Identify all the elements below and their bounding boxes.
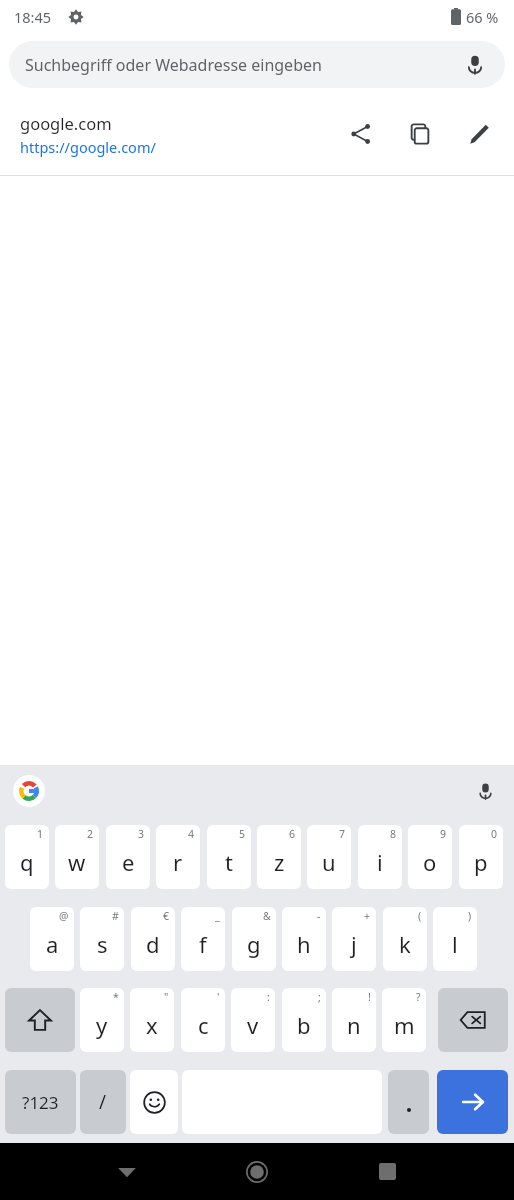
button[interactable]: Recents <box>337 1143 437 1200</box>
staticText: 1 <box>37 827 44 841</box>
button[interactable]: 4 <box>156 825 200 889</box>
staticText: d <box>146 929 160 959</box>
staticText: Suchbegriff oder Webadresse eingeben <box>25 54 322 76</box>
staticText: @ <box>59 909 69 923</box>
staticText: ? <box>416 990 421 1004</box>
staticText: 66 % <box>466 7 499 27</box>
staticText: 7 <box>339 827 346 841</box>
button[interactable]: 0 <box>459 825 503 889</box>
staticText: g <box>247 929 261 959</box>
staticText: x <box>146 1010 158 1040</box>
staticText: ; <box>318 990 321 1004</box>
staticText: i <box>377 847 383 877</box>
button[interactable]: ) <box>433 907 477 971</box>
button[interactable]: Google <box>13 775 45 807</box>
staticText: q <box>20 847 34 877</box>
staticText: " <box>164 990 169 1004</box>
staticText: u <box>322 847 336 877</box>
button[interactable]: ' <box>181 988 225 1052</box>
button[interactable]: @ <box>30 907 74 971</box>
button[interactable]: Go <box>437 1070 508 1134</box>
button[interactable]: _ <box>181 907 225 971</box>
staticText: ?123 <box>22 1091 59 1114</box>
staticText: € <box>163 909 170 923</box>
button[interactable]: Slash <box>80 1070 126 1134</box>
button[interactable]: Copy <box>398 112 442 156</box>
staticText: s <box>97 929 108 959</box>
staticText: j <box>351 929 357 959</box>
button[interactable]: - <box>282 907 326 971</box>
staticText: 3 <box>138 827 145 841</box>
staticText: z <box>274 847 285 877</box>
staticText: 5 <box>239 827 246 841</box>
button[interactable]: ; <box>282 988 326 1052</box>
button[interactable]: € <box>131 907 175 971</box>
staticText: n <box>347 1010 361 1040</box>
staticText: ) <box>468 909 472 923</box>
staticText: - <box>317 909 321 923</box>
staticText: 8 <box>390 827 397 841</box>
staticText: f <box>199 929 207 959</box>
button[interactable]: 3 <box>106 825 150 889</box>
button[interactable]: google.com <box>0 96 514 176</box>
button[interactable]: + <box>332 907 376 971</box>
staticText: # <box>112 909 119 923</box>
staticText: _ <box>215 909 220 923</box>
button[interactable]: 6 <box>257 825 301 889</box>
button[interactable]: ! <box>332 988 376 1052</box>
staticText: e <box>122 847 135 877</box>
staticText: y <box>96 1010 108 1040</box>
button[interactable]: Voice search <box>458 48 492 82</box>
button[interactable]: Edit <box>458 112 502 156</box>
staticText: v <box>247 1010 259 1040</box>
staticText: ' <box>217 990 220 1004</box>
staticText: 9 <box>440 827 447 841</box>
staticText: ( <box>418 909 422 923</box>
button[interactable]: 5 <box>207 825 251 889</box>
button[interactable]: 2 <box>55 825 99 889</box>
staticText: https://google.com/ <box>20 137 156 157</box>
button[interactable]: Symbols <box>5 1070 76 1134</box>
button[interactable]: Voice input <box>468 774 502 808</box>
staticText: & <box>263 909 271 923</box>
staticText: p <box>474 847 488 877</box>
staticText: w <box>68 847 86 877</box>
staticText: a <box>46 929 59 959</box>
button[interactable]: 1 <box>5 825 49 889</box>
staticText: b <box>297 1010 311 1040</box>
staticText: r <box>173 847 183 877</box>
button[interactable]: 9 <box>408 825 452 889</box>
staticText: 18:45 <box>14 7 52 27</box>
button[interactable]: " <box>130 988 174 1052</box>
button[interactable]: Suchbegriff oder Webadresse eingeben <box>9 41 505 88</box>
button[interactable]: Back <box>77 1143 177 1200</box>
staticText: l <box>452 929 458 959</box>
button[interactable]: * <box>80 988 124 1052</box>
staticText: 0 <box>491 827 498 841</box>
button[interactable]: : <box>231 988 275 1052</box>
staticText: m <box>394 1010 415 1040</box>
button[interactable]: Shift <box>5 988 75 1052</box>
button[interactable]: # <box>80 907 124 971</box>
staticText: k <box>399 929 411 959</box>
button[interactable]: ? <box>382 988 426 1052</box>
staticText: c <box>198 1010 209 1040</box>
button[interactable]: 8 <box>358 825 402 889</box>
staticText: ! <box>368 990 371 1004</box>
button[interactable]: & <box>232 907 276 971</box>
staticText: 4 <box>188 827 195 841</box>
button[interactable]: Backspace <box>438 988 508 1052</box>
button[interactable]: 7 <box>307 825 351 889</box>
button[interactable]: Emoji <box>130 1070 178 1134</box>
staticText: o <box>423 847 437 877</box>
staticText: google.com <box>20 112 112 134</box>
button[interactable]: Home <box>207 1143 307 1200</box>
button[interactable]: ( <box>383 907 427 971</box>
button[interactable]: Share <box>339 112 383 156</box>
staticText: 2 <box>87 827 94 841</box>
staticText: / <box>99 1089 107 1115</box>
staticText: t <box>225 847 233 877</box>
button[interactable]: Period <box>388 1070 429 1134</box>
staticText: 6 <box>289 827 296 841</box>
